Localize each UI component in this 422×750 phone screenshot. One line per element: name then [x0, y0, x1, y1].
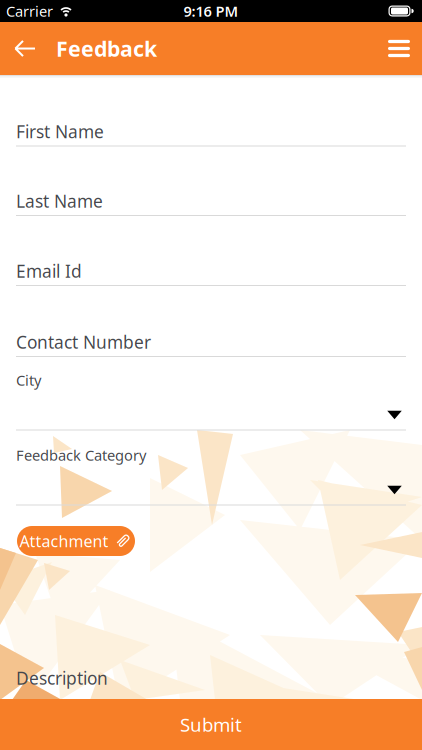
button[interactable]: Back	[0, 39, 56, 57]
button[interactable]: Menu	[378, 40, 422, 57]
button[interactable]: Description	[16, 658, 406, 698]
staticText: Email Id	[16, 259, 82, 282]
staticText: Submit	[180, 712, 242, 737]
staticText: City	[16, 370, 41, 390]
staticText: Feedback	[56, 34, 157, 63]
button[interactable]: City	[16, 372, 406, 434]
button[interactable]: Attachment	[17, 526, 135, 556]
staticText: Last Name	[16, 189, 103, 212]
button[interactable]: Submit	[0, 699, 422, 750]
staticText: 9:16 PM	[183, 1, 238, 21]
staticText: Contact Number	[16, 330, 151, 353]
button[interactable]: Feedback Category	[16, 447, 406, 509]
button[interactable]: First Name	[16, 106, 406, 146]
staticText: Description	[16, 666, 108, 689]
button[interactable]: Last Name	[16, 176, 406, 216]
staticText: Attachment	[19, 530, 108, 552]
staticText: Feedback Category	[16, 445, 146, 465]
staticText: First Name	[16, 120, 104, 143]
button[interactable]: Contact Number	[16, 317, 406, 357]
button[interactable]: Email Id	[16, 246, 406, 286]
staticText: Carrier	[6, 1, 53, 21]
